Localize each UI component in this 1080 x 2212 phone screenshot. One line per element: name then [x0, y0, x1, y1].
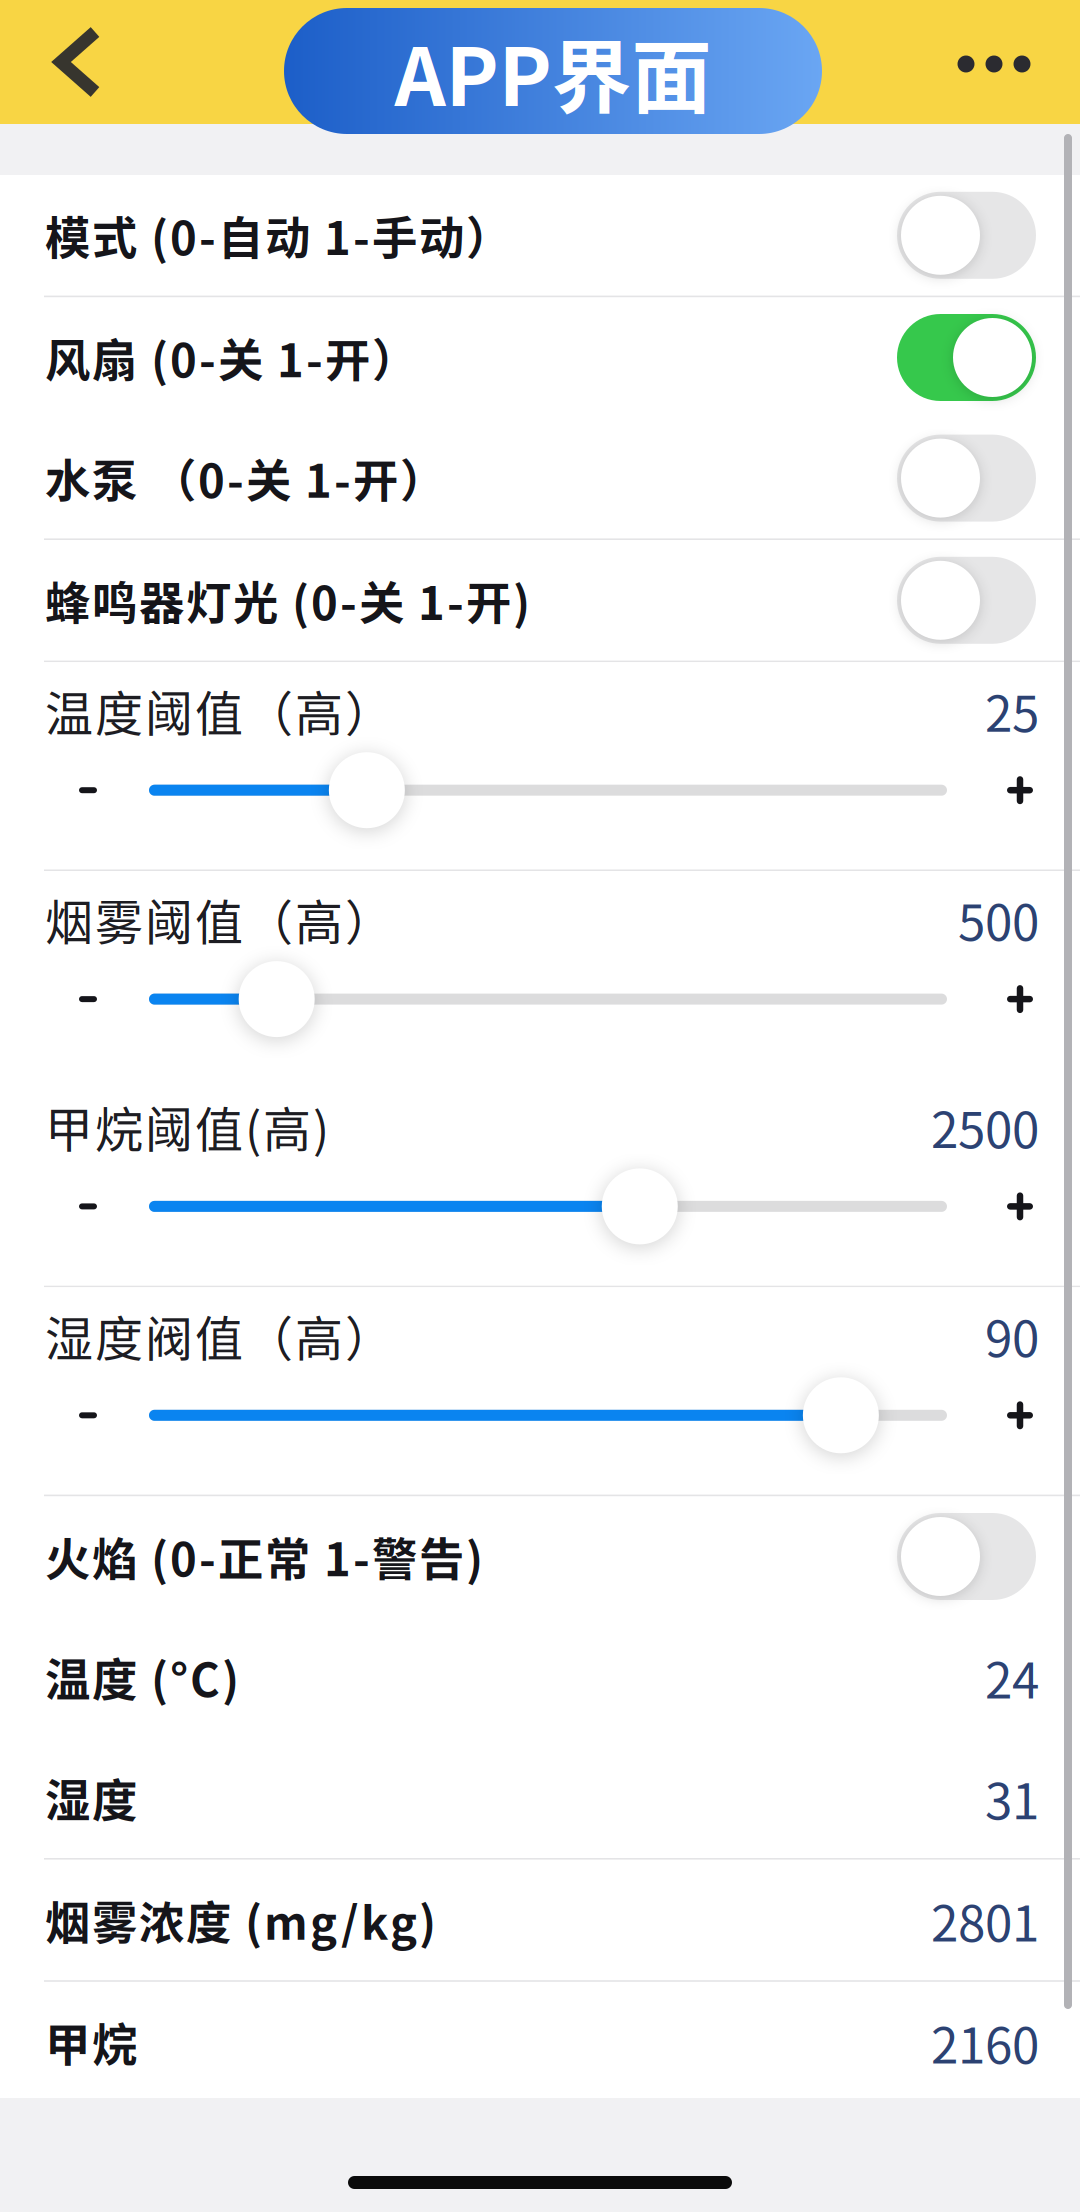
- button[interactable]: Off: [897, 557, 1036, 644]
- staticText: 湿度阀值（高）: [45, 1300, 393, 1370]
- button[interactable]: Decrease: [50, 961, 126, 1037]
- staticText: 2500: [931, 1091, 1039, 1162]
- button[interactable]: 火焰 (0-正常 1-警告): [0, 1496, 1080, 1617]
- button[interactable]: Off: [897, 435, 1036, 522]
- button[interactable]: APP界面: [284, 8, 822, 134]
- button[interactable]: 蜂鸣器灯光 (0-关 1-开): [0, 540, 1080, 661]
- button[interactable]: Off: [897, 192, 1036, 279]
- staticText: 500: [958, 883, 1039, 955]
- staticText: 2801: [931, 1884, 1039, 1956]
- staticText: 蜂鸣器灯光 (0-关 1-开): [45, 567, 530, 633]
- staticText: 31: [985, 1762, 1039, 1833]
- staticText: 风扇 (0-关 1-开）: [45, 325, 417, 390]
- button[interactable]: 甲烷: [0, 1982, 1080, 2102]
- button[interactable]: Back: [24, 0, 132, 124]
- button[interactable]: Increase: [982, 961, 1058, 1037]
- staticText: APP界面: [394, 13, 711, 129]
- button[interactable]: Decrease: [50, 1377, 126, 1453]
- staticText: 水泵 （0-关 1-开）: [45, 445, 445, 511]
- staticText: 模式 (0-自动 1-手动）: [45, 202, 511, 268]
- staticText: 24: [985, 1641, 1039, 1713]
- button[interactable]: 水泵 （0-关 1-开）: [0, 418, 1080, 538]
- staticText: 湿度: [45, 1765, 137, 1830]
- staticText: 90: [985, 1300, 1039, 1371]
- button[interactable]: Decrease: [50, 1168, 126, 1244]
- staticText: 甲烷: [45, 2009, 137, 2075]
- button[interactable]: Increase: [982, 1377, 1058, 1453]
- button[interactable]: 风扇 (0-关 1-开）: [0, 297, 1080, 418]
- button[interactable]: Increase: [982, 1168, 1058, 1244]
- button[interactable]: Decrease: [50, 752, 126, 828]
- button[interactable]: 烟雾浓度 (mg/kg): [0, 1860, 1080, 1980]
- staticText: 烟雾阈值（高）: [45, 884, 393, 954]
- button[interactable]: 模式 (0-自动 1-手动）: [0, 175, 1080, 296]
- button[interactable]: Off: [897, 1513, 1036, 1600]
- staticText: 温度 (°C): [45, 1644, 239, 1710]
- staticText: 25: [985, 674, 1039, 746]
- staticText: 烟雾浓度 (mg/kg): [45, 1887, 436, 1953]
- staticText: 2160: [931, 2006, 1039, 2078]
- staticText: 甲烷阈值(高): [45, 1092, 329, 1161]
- button[interactable]: 温度 (°C): [0, 1617, 1080, 1737]
- button[interactable]: Increase: [982, 752, 1058, 828]
- button[interactable]: 湿度: [0, 1737, 1080, 1858]
- button[interactable]: On: [897, 314, 1036, 401]
- staticText: 火焰 (0-正常 1-警告): [45, 1524, 483, 1589]
- button[interactable]: More options: [924, 2, 1064, 126]
- staticText: 温度阈值（高）: [45, 675, 393, 745]
